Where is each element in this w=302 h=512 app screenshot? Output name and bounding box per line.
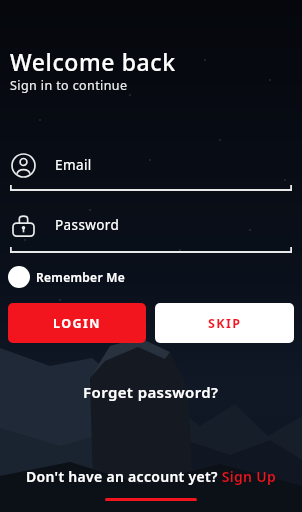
button[interactable]: SKIP: [155, 303, 294, 343]
staticText: Email: [55, 156, 92, 174]
staticText: Sign in to continue: [10, 77, 128, 94]
button[interactable]: LOGIN: [8, 303, 146, 343]
staticText: Password: [55, 216, 120, 234]
button[interactable]: Password: [0, 209, 302, 241]
staticText: Remember Me: [36, 269, 126, 285]
staticText: LOGIN: [53, 315, 101, 332]
button[interactable]: Email: [0, 149, 302, 181]
button[interactable]: Forget password?: [83, 382, 219, 402]
staticText: Welcome back: [10, 46, 176, 77]
button[interactable]: Remember Me: [8, 266, 126, 288]
button[interactable]: Don't have an account yet? Sign Up: [26, 467, 277, 486]
staticText: SKIP: [208, 315, 242, 332]
